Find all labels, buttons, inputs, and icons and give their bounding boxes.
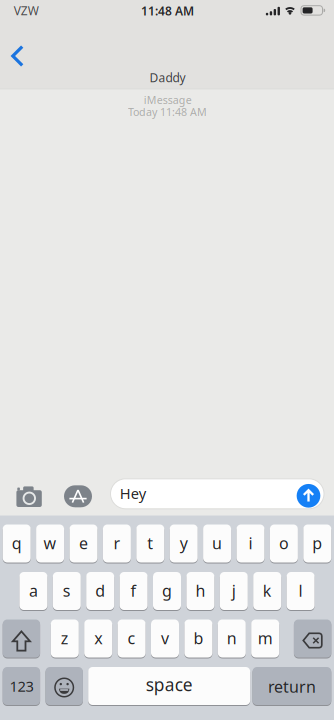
staticText: x bbox=[94, 627, 102, 649]
button[interactable]: i bbox=[236, 524, 264, 563]
button[interactable]: b bbox=[184, 619, 212, 658]
button[interactable]: e bbox=[69, 524, 97, 563]
button[interactable]: t bbox=[136, 524, 164, 563]
button[interactable]: u bbox=[203, 524, 231, 563]
button[interactable]: Delete bbox=[294, 619, 331, 658]
button[interactable]: j bbox=[220, 571, 248, 610]
staticText: z bbox=[61, 627, 69, 649]
staticText: c bbox=[128, 627, 136, 649]
button[interactable]: a bbox=[19, 571, 47, 610]
staticText: return bbox=[268, 676, 316, 697]
staticText: b bbox=[193, 627, 203, 649]
button[interactable]: f bbox=[120, 571, 148, 610]
staticText: 11:48 AM bbox=[141, 3, 194, 19]
button[interactable]: Daddy conversation details bbox=[150, 70, 186, 85]
button[interactable]: m bbox=[251, 619, 279, 658]
button[interactable]: Back bbox=[4, 41, 30, 71]
staticText: 123 bbox=[9, 676, 33, 696]
staticText: e bbox=[79, 532, 88, 554]
staticText: d bbox=[95, 580, 105, 601]
button[interactable]: x bbox=[84, 619, 112, 658]
staticText: i bbox=[248, 532, 252, 554]
staticText: k bbox=[263, 580, 272, 601]
staticText: p bbox=[312, 532, 322, 554]
button[interactable]: d bbox=[86, 571, 114, 610]
button[interactable]: c bbox=[118, 619, 146, 658]
staticText: h bbox=[195, 580, 205, 601]
button[interactable]: p bbox=[303, 524, 331, 563]
button[interactable]: w bbox=[36, 524, 64, 563]
staticText: space bbox=[146, 673, 193, 696]
staticText: l bbox=[299, 580, 303, 601]
staticText: a bbox=[29, 580, 38, 601]
button[interactable]: y bbox=[170, 524, 198, 563]
staticText: v bbox=[161, 627, 169, 649]
staticText: m bbox=[258, 627, 273, 649]
button[interactable]: l bbox=[287, 571, 315, 610]
button[interactable]: s bbox=[53, 571, 81, 610]
button[interactable]: r bbox=[103, 524, 131, 563]
button[interactable]: return bbox=[252, 666, 331, 705]
staticText: n bbox=[227, 627, 237, 649]
staticText: Today 11:48 AM bbox=[128, 105, 207, 119]
staticText: o bbox=[279, 532, 289, 554]
button[interactable]: Apps bbox=[62, 483, 94, 509]
button[interactable]: n bbox=[218, 619, 246, 658]
button[interactable]: Send bbox=[297, 484, 320, 508]
button[interactable]: o bbox=[270, 524, 298, 563]
button[interactable]: Camera bbox=[12, 483, 46, 511]
staticText: s bbox=[63, 580, 71, 601]
staticText: u bbox=[212, 532, 222, 554]
staticText: w bbox=[44, 532, 57, 554]
button[interactable]: q bbox=[3, 524, 31, 563]
button[interactable]: Shift bbox=[3, 619, 40, 658]
staticText: iMessage bbox=[144, 93, 192, 107]
staticText: q bbox=[12, 532, 22, 554]
button[interactable]: v bbox=[151, 619, 179, 658]
staticText: r bbox=[113, 532, 120, 554]
staticText: y bbox=[180, 532, 188, 554]
button[interactable]: g bbox=[153, 571, 181, 610]
button[interactable]: h bbox=[186, 571, 214, 610]
staticText: VZW bbox=[14, 3, 39, 19]
staticText: j bbox=[232, 580, 236, 601]
button[interactable]: z bbox=[51, 619, 79, 658]
staticText: t bbox=[147, 532, 153, 554]
button[interactable]: k bbox=[253, 571, 281, 610]
staticText: Hey bbox=[120, 484, 146, 503]
staticText: g bbox=[162, 580, 172, 601]
button[interactable]: 123 bbox=[3, 666, 40, 705]
staticText: f bbox=[131, 580, 137, 601]
button[interactable]: space bbox=[88, 666, 250, 705]
button[interactable]: Emoji bbox=[45, 666, 83, 705]
staticText: Daddy bbox=[150, 70, 186, 85]
